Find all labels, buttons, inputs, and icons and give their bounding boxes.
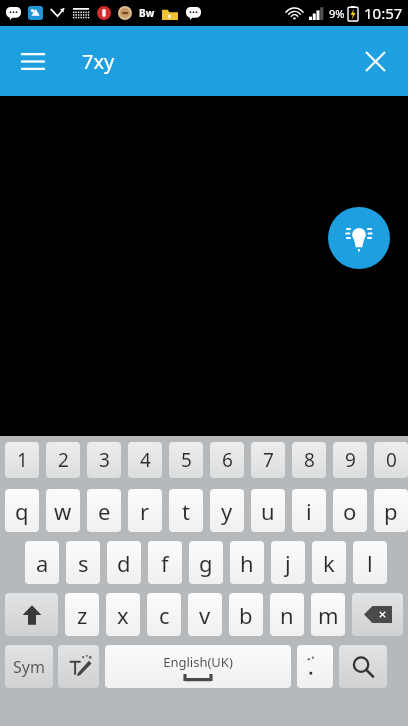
staticText: 6 bbox=[222, 447, 233, 473]
button[interactable]: z bbox=[65, 593, 99, 636]
staticText: Sym bbox=[13, 656, 45, 678]
button[interactable]: 3 bbox=[87, 442, 121, 478]
button[interactable]: 2 bbox=[46, 442, 80, 478]
staticText: 7xy bbox=[82, 48, 115, 75]
staticText: Bw bbox=[139, 6, 155, 20]
staticText: z bbox=[77, 600, 88, 630]
staticText: r bbox=[140, 496, 150, 526]
staticText: 0 bbox=[386, 447, 397, 473]
button[interactable]: Navigation menu bbox=[10, 38, 56, 84]
button[interactable]: c bbox=[147, 593, 181, 636]
button[interactable]: x bbox=[106, 593, 140, 636]
button[interactable]: Handwriting input bbox=[58, 645, 99, 688]
staticText: n bbox=[280, 600, 294, 630]
button[interactable]: Space bbox=[105, 645, 291, 688]
staticText: p bbox=[384, 496, 398, 526]
button[interactable]: j bbox=[271, 541, 305, 584]
staticText: s bbox=[78, 548, 89, 578]
button[interactable]: q bbox=[5, 489, 39, 532]
button[interactable]: l bbox=[353, 541, 387, 584]
staticText: 1 bbox=[17, 447, 28, 473]
button[interactable]: 8 bbox=[292, 442, 326, 478]
button[interactable]: a bbox=[25, 541, 59, 584]
staticText: 3 bbox=[99, 447, 110, 473]
staticText: x bbox=[117, 600, 129, 630]
button[interactable]: 9 bbox=[333, 442, 367, 478]
staticText: i bbox=[306, 496, 312, 526]
staticText: v bbox=[199, 600, 211, 630]
staticText: w bbox=[54, 496, 72, 526]
button[interactable]: 5 bbox=[169, 442, 203, 478]
staticText: 2 bbox=[58, 447, 69, 473]
staticText: u bbox=[261, 496, 275, 526]
staticText: d bbox=[117, 548, 131, 578]
button[interactable]: g bbox=[189, 541, 223, 584]
staticText: 4 bbox=[140, 447, 151, 473]
button[interactable]: w bbox=[46, 489, 80, 532]
button[interactable]: p bbox=[374, 489, 408, 532]
staticText: j bbox=[285, 548, 291, 578]
button[interactable]: 4 bbox=[128, 442, 162, 478]
button[interactable]: e bbox=[87, 489, 121, 532]
staticText: b bbox=[239, 600, 253, 630]
staticText: k bbox=[323, 548, 335, 578]
button[interactable]: n bbox=[270, 593, 304, 636]
button[interactable]: 6 bbox=[210, 442, 244, 478]
button[interactable]: r bbox=[128, 489, 162, 532]
staticText: q bbox=[15, 496, 29, 526]
button[interactable]: 0 bbox=[374, 442, 408, 478]
staticText: 10:57 bbox=[364, 3, 403, 23]
staticText: m bbox=[318, 600, 339, 630]
button[interactable]: Close bbox=[352, 38, 398, 84]
staticText: g bbox=[199, 548, 213, 578]
button[interactable]: m bbox=[311, 593, 345, 636]
staticText: 9 bbox=[345, 447, 356, 473]
button[interactable]: t bbox=[169, 489, 203, 532]
button[interactable]: Sym bbox=[5, 645, 53, 688]
staticText: h bbox=[240, 548, 254, 578]
staticText: l bbox=[367, 548, 373, 578]
button[interactable]: u bbox=[251, 489, 285, 532]
staticText: 9% bbox=[329, 6, 345, 21]
button[interactable]: Shift bbox=[5, 593, 58, 636]
staticText: f bbox=[161, 548, 169, 578]
button[interactable]: f bbox=[148, 541, 182, 584]
button[interactable]: Search bbox=[339, 645, 387, 688]
staticText: 8 bbox=[304, 447, 315, 473]
button[interactable]: 7 bbox=[251, 442, 285, 478]
button[interactable]: Toggle flashlight bbox=[328, 207, 390, 269]
button[interactable]: i bbox=[292, 489, 326, 532]
staticText: a bbox=[36, 548, 49, 578]
button[interactable]: 1 bbox=[5, 442, 39, 478]
button[interactable]: k bbox=[312, 541, 346, 584]
staticText: English(UK) bbox=[163, 653, 233, 671]
staticText: 5 bbox=[181, 447, 192, 473]
staticText: c bbox=[159, 600, 170, 630]
staticText: 7 bbox=[263, 447, 274, 473]
staticText: t bbox=[182, 496, 190, 526]
button[interactable]: d bbox=[107, 541, 141, 584]
button[interactable]: Punctuation bbox=[297, 645, 333, 688]
button[interactable]: s bbox=[66, 541, 100, 584]
button[interactable]: h bbox=[230, 541, 264, 584]
button[interactable]: v bbox=[188, 593, 222, 636]
button[interactable]: y bbox=[210, 489, 244, 532]
button[interactable]: o bbox=[333, 489, 367, 532]
staticText: o bbox=[343, 496, 357, 526]
button[interactable]: Backspace bbox=[352, 593, 403, 636]
staticText: e bbox=[98, 496, 111, 526]
staticText: y bbox=[221, 496, 233, 526]
button[interactable]: b bbox=[229, 593, 263, 636]
